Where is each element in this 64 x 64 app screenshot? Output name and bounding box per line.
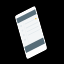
- button[interactable]: [26, 22, 39, 36]
- button[interactable]: Item avatar: [19, 24, 23, 28]
- button[interactable]: Top app bar: [15, 4, 38, 29]
- button[interactable]: Item avatar: [22, 33, 26, 37]
- button[interactable]: Item avatar: [20, 28, 24, 33]
- button[interactable]: [24, 14, 37, 28]
- button[interactable]: Bottom navigation: [22, 32, 47, 58]
- button[interactable]: [27, 26, 40, 39]
- button[interactable]: [25, 18, 38, 32]
- button[interactable]: Item avatar: [23, 37, 27, 42]
